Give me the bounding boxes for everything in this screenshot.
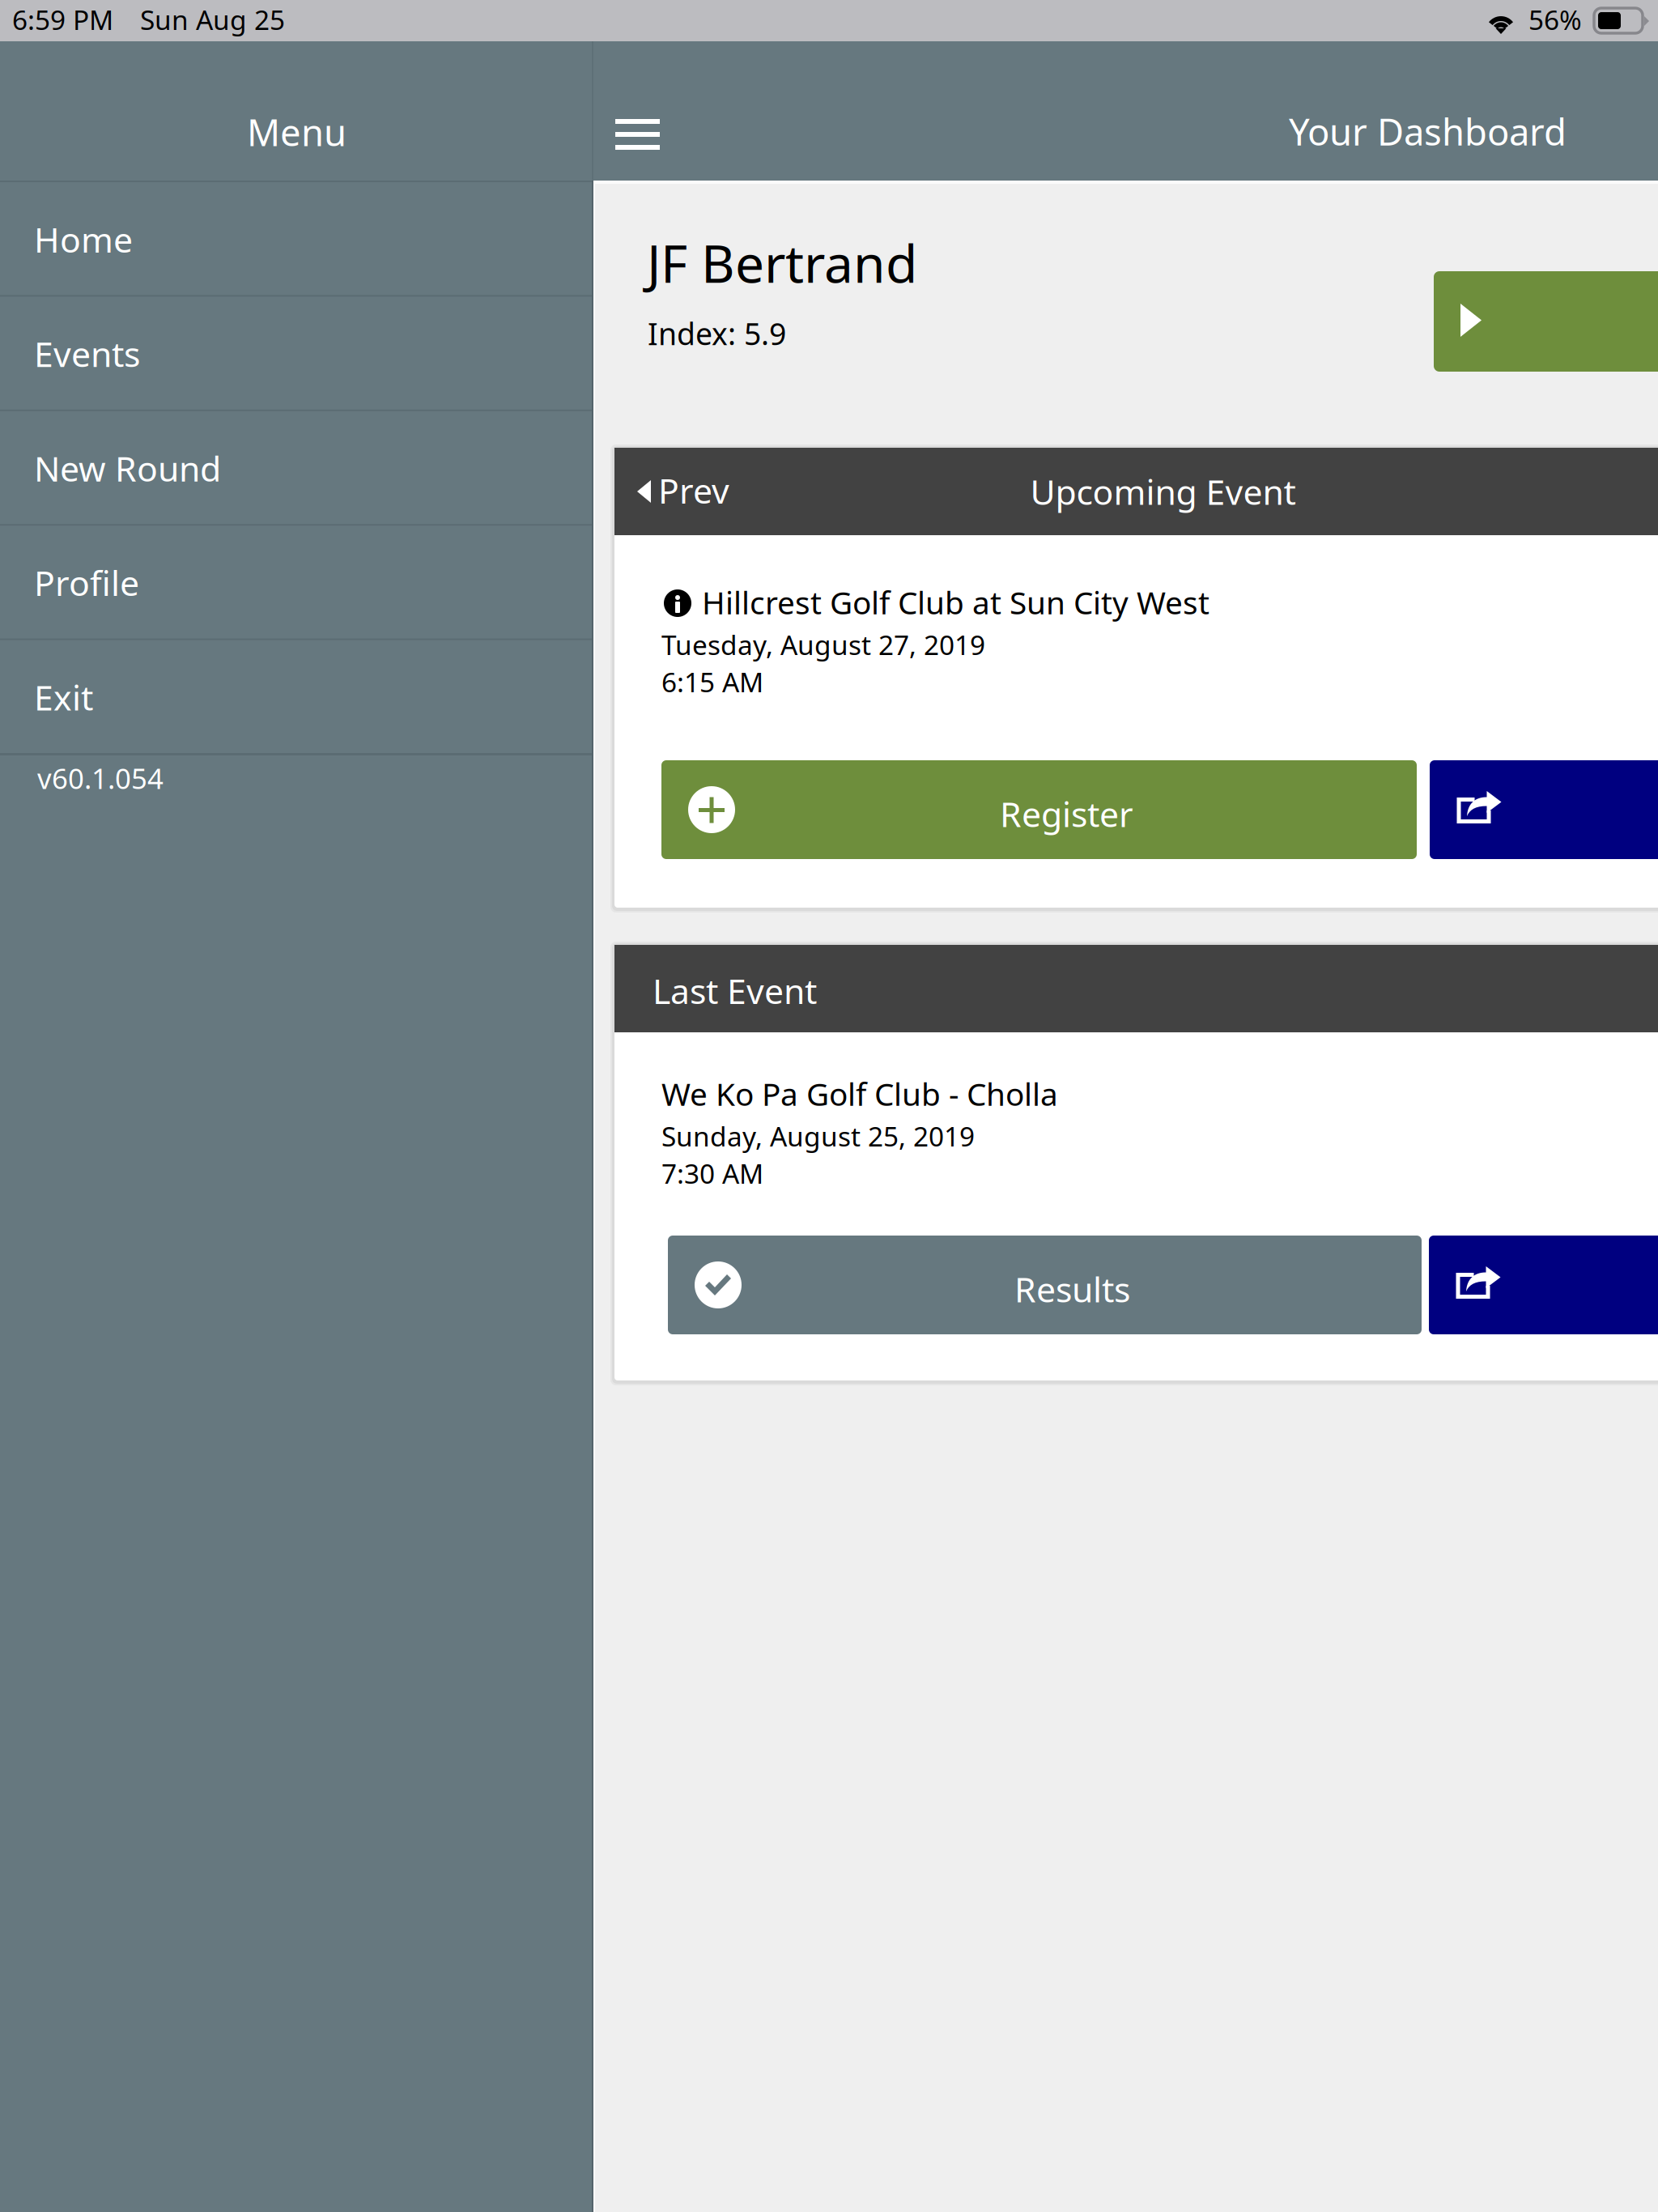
staticText: New Round <box>34 445 221 491</box>
button[interactable]: Exit <box>0 640 593 755</box>
staticText: Register <box>1000 791 1133 837</box>
staticText: Home <box>34 216 133 262</box>
button[interactable]: Prev <box>614 448 756 535</box>
staticText: Upcoming Event <box>1030 469 1296 514</box>
staticText: Events <box>34 331 140 377</box>
button[interactable]: Events <box>0 297 593 411</box>
staticText: 6:59 PM <box>12 2 113 37</box>
button[interactable]: Profile <box>0 526 593 640</box>
button[interactable]: Register <box>661 760 1417 859</box>
staticText: Prev <box>658 467 729 513</box>
staticText: Tuesday, August 27, 2019 <box>661 627 985 663</box>
button[interactable]: Share <box>1429 1236 1658 1334</box>
staticText: Index: 5.9 <box>648 313 786 353</box>
staticText: Profile <box>34 560 139 606</box>
staticText: Your Dashboard <box>1289 107 1567 156</box>
staticText: Last Event <box>653 968 817 1013</box>
staticText: Sunday, August 25, 2019 <box>661 1118 975 1154</box>
staticText: Exit <box>34 674 93 720</box>
button[interactable]: Open menu <box>593 41 699 181</box>
staticText: Hillcrest Golf Club at Sun City West <box>702 581 1209 623</box>
button[interactable]: Results <box>668 1236 1422 1334</box>
staticText: We Ko Pa Golf Club - Cholla <box>661 1073 1058 1114</box>
staticText: JF Bertrand <box>647 228 917 297</box>
staticText: v60.1.054 <box>37 759 164 797</box>
staticText: 56% <box>1528 2 1582 37</box>
staticText: Menu <box>247 108 346 156</box>
staticText: Sun Aug 25 <box>140 2 285 37</box>
button[interactable]: Home <box>0 182 593 297</box>
button[interactable]: Share <box>1430 760 1658 859</box>
button[interactable]: Start round <box>1434 271 1658 372</box>
staticText: 7:30 AM <box>661 1155 763 1191</box>
staticText: Results <box>1014 1266 1130 1312</box>
staticText: 6:15 AM <box>661 664 763 700</box>
button[interactable]: New Round <box>0 411 593 526</box>
